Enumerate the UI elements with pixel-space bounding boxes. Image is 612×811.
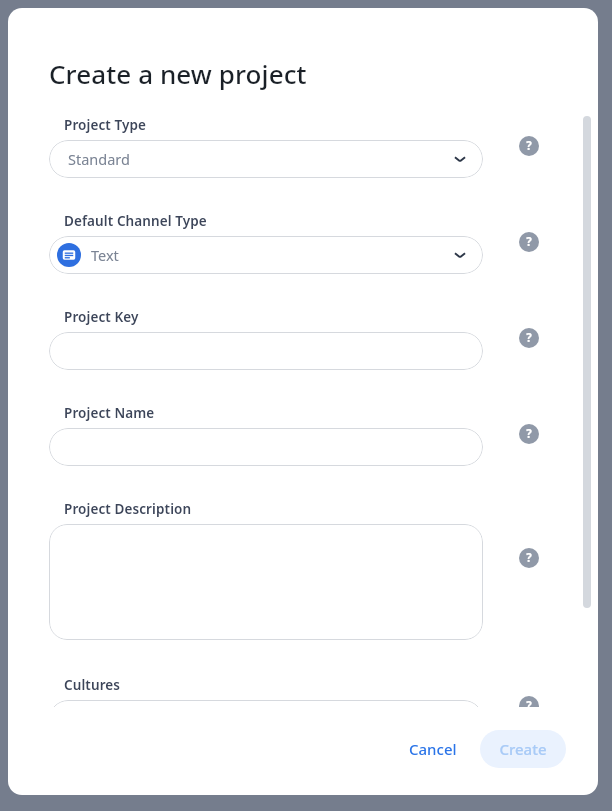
staticText: ? bbox=[526, 138, 532, 154]
button[interactable]: Help bbox=[519, 548, 539, 568]
staticText: Standard bbox=[68, 149, 130, 169]
staticText: ? bbox=[526, 234, 532, 250]
staticText: ? bbox=[526, 330, 532, 346]
button[interactable]: Text bbox=[49, 236, 483, 274]
button[interactable]: Help bbox=[519, 328, 539, 348]
button[interactable] bbox=[49, 700, 483, 707]
button[interactable] bbox=[49, 524, 483, 640]
button[interactable]: Standard bbox=[49, 140, 483, 178]
staticText: Project Description bbox=[64, 500, 192, 518]
staticText: Cultures bbox=[64, 676, 121, 694]
staticText: Cancel bbox=[409, 739, 457, 759]
staticText: Create a new project bbox=[49, 56, 307, 91]
button[interactable]: Create bbox=[480, 730, 566, 768]
staticText: Create bbox=[499, 739, 547, 759]
button[interactable]: Help bbox=[519, 232, 539, 252]
staticText: ? bbox=[526, 426, 532, 442]
staticText: ? bbox=[526, 698, 532, 707]
button[interactable]: Help bbox=[519, 136, 539, 156]
button[interactable]: Help bbox=[519, 696, 539, 707]
button[interactable] bbox=[49, 332, 483, 370]
staticText: Project Name bbox=[64, 404, 155, 422]
button[interactable]: Cancel bbox=[399, 731, 467, 767]
button[interactable] bbox=[49, 428, 483, 466]
staticText: ? bbox=[526, 550, 532, 566]
staticText: Default Channel Type bbox=[64, 212, 207, 230]
staticText: Project Type bbox=[64, 116, 147, 134]
staticText: Project Key bbox=[64, 308, 139, 326]
button[interactable]: Help bbox=[519, 424, 539, 444]
staticText: Text bbox=[91, 245, 119, 265]
